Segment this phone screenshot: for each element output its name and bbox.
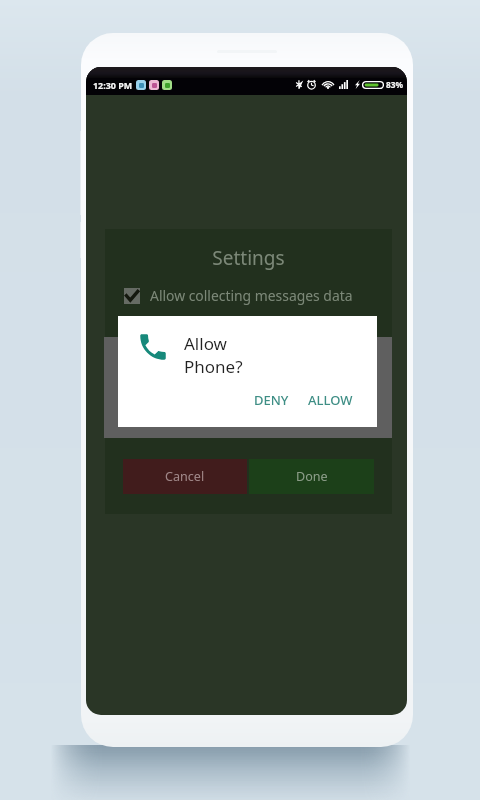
staticText: Phone?: [184, 355, 243, 378]
staticText: 12:30 PM: [93, 79, 133, 91]
staticText: Settings: [105, 245, 392, 271]
staticText: DENY: [254, 391, 289, 409]
staticText: ALLOW: [308, 391, 353, 409]
staticText: Allow collecting messages data: [150, 286, 353, 305]
button[interactable]: Cancel: [123, 459, 247, 494]
staticText: 83%: [386, 79, 403, 90]
button[interactable]: DENY: [246, 385, 297, 415]
staticText: Allow: [184, 332, 227, 355]
staticText: Done: [296, 468, 328, 485]
button[interactable]: Allow collecting messages data: [105, 286, 392, 305]
staticText: Cancel: [165, 468, 205, 485]
button[interactable]: Done: [249, 459, 374, 494]
button[interactable]: ALLOW: [300, 385, 361, 415]
